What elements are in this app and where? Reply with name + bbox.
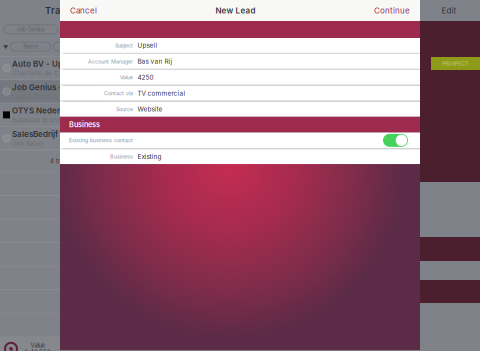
staticText: Upsell <box>137 42 157 49</box>
staticText: € 46.550 <box>24 349 51 351</box>
button[interactable]: OTYS Nederl <box>0 104 100 126</box>
staticText: Contact via <box>104 90 133 97</box>
staticText: Tra <box>45 5 60 16</box>
button[interactable]: Contact via <box>60 86 420 101</box>
staticText: Auto BV - Up <box>12 59 63 69</box>
button[interactable]: Edit <box>425 0 473 21</box>
staticText: New Lead <box>215 6 255 15</box>
staticText: Edit <box>441 6 456 15</box>
button[interactable]: Existing business contact <box>60 133 420 148</box>
staticText: Bastiaan Brans <box>12 116 61 124</box>
staticText: Charlene de Cit <box>12 69 63 77</box>
staticText: Value <box>30 342 44 349</box>
staticText: Business <box>110 153 133 160</box>
staticText: Job Genius <box>17 26 45 33</box>
button[interactable]: SalesBedrijf <box>0 127 100 150</box>
staticText: PROSPECT <box>442 60 468 67</box>
button[interactable]: Cancel <box>60 0 97 21</box>
staticText: Jan Sales <box>12 139 44 147</box>
staticText: SalesBedrijf <box>12 129 58 139</box>
button[interactable]: Business <box>60 149 420 164</box>
staticText: Name <box>23 43 38 50</box>
staticText: Existing business contact <box>69 137 133 144</box>
staticText: Subject <box>115 42 133 49</box>
button[interactable]: Value <box>60 70 420 85</box>
staticText: TV commercial <box>137 89 185 97</box>
staticText: Bas van Rij <box>137 58 172 65</box>
staticText: 4 tr <box>50 158 60 165</box>
staticText: Source <box>116 106 133 112</box>
staticText: OTYS Nederl <box>12 106 62 115</box>
staticText: Website <box>137 105 162 113</box>
staticText: Existing <box>137 153 161 160</box>
staticText: Job Genius - <box>12 82 62 92</box>
staticText: Continue <box>374 6 410 15</box>
staticText: Business <box>69 120 100 129</box>
button[interactable]: Source <box>60 102 420 117</box>
button[interactable]: Auto BV - Up <box>0 57 100 79</box>
staticText: Cancel <box>70 6 97 15</box>
staticText: Value <box>120 74 133 81</box>
staticText: 4250 <box>137 73 153 81</box>
button[interactable]: Continue <box>374 0 420 21</box>
button[interactable]: Subject <box>60 38 420 53</box>
button[interactable]: Job Genius - <box>0 80 100 103</box>
button[interactable]: Account Manager <box>60 54 420 69</box>
staticText: Account Manager <box>88 58 133 65</box>
